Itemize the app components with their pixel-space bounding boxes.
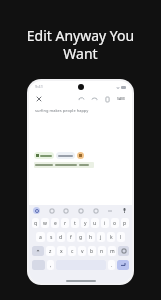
button[interactable]: i <box>101 218 109 228</box>
staticText: f <box>70 234 72 241</box>
button[interactable]: o <box>111 218 119 228</box>
button[interactable]: Tool 1 <box>62 207 69 214</box>
button[interactable]: y <box>81 218 89 228</box>
staticText: b <box>90 248 94 255</box>
button[interactable]: , <box>47 260 54 270</box>
staticText: g <box>79 234 83 241</box>
button[interactable]: Tool 2 <box>77 207 84 214</box>
button[interactable]: Tool 0 <box>48 207 55 214</box>
button[interactable]: Close <box>34 94 43 103</box>
staticText: SAVE <box>117 96 126 101</box>
staticText: o <box>113 220 117 227</box>
staticText: a <box>39 234 42 241</box>
staticText: u <box>93 220 97 227</box>
button[interactable]: k <box>107 232 115 242</box>
staticText: q <box>34 220 38 227</box>
staticText: h <box>89 234 93 241</box>
button[interactable]: b <box>88 246 96 256</box>
button[interactable]: l <box>117 232 125 242</box>
staticText: z <box>49 248 52 255</box>
staticText: y <box>84 220 87 227</box>
button[interactable]: d <box>57 232 65 242</box>
button[interactable]: n <box>98 246 106 256</box>
button[interactable] <box>34 162 94 168</box>
button[interactable]: u <box>91 218 99 228</box>
staticText: p <box>123 220 127 227</box>
button[interactable]: p <box>121 218 129 228</box>
button[interactable]: h <box>87 232 95 242</box>
button[interactable] <box>34 152 54 159</box>
button[interactable]: Copy <box>103 95 111 103</box>
staticText: w <box>43 220 47 227</box>
staticText: 9:41 <box>35 84 43 89</box>
staticText: l <box>120 234 122 241</box>
staticText: v <box>81 248 84 255</box>
button[interactable]: Redo <box>90 95 98 103</box>
button[interactable]: v <box>78 246 86 256</box>
button[interactable]: Numbers <box>32 260 45 270</box>
staticText: n <box>100 248 104 255</box>
button[interactable]: SAVE <box>116 95 127 102</box>
button[interactable]: j <box>97 232 105 242</box>
staticText: i <box>104 220 106 227</box>
staticText: d <box>59 234 63 241</box>
button[interactable]: r <box>61 218 69 228</box>
staticText: , <box>50 262 52 269</box>
staticText: r <box>64 220 67 227</box>
staticText: e <box>54 220 57 227</box>
button[interactable]: . <box>108 260 115 270</box>
button[interactable]: More <box>106 207 113 214</box>
staticText: t <box>74 220 76 227</box>
button[interactable]: g <box>77 232 85 242</box>
staticText: s <box>50 234 53 241</box>
button[interactable]: Tool 3 <box>92 207 99 214</box>
staticText: c <box>71 248 74 255</box>
button[interactable]: Assistant <box>33 207 40 214</box>
button[interactable]: e <box>51 218 59 228</box>
button[interactable]: c <box>68 246 76 256</box>
staticText: Edit Anyway You Want <box>14 26 147 63</box>
button[interactable]: m <box>108 246 116 256</box>
button[interactable]: Shift <box>32 246 44 256</box>
button[interactable]: z <box>46 246 55 256</box>
staticText: k <box>110 234 113 241</box>
button[interactable]: q <box>32 218 39 228</box>
button[interactable]: Backspace <box>118 246 129 256</box>
button[interactable] <box>56 152 75 159</box>
button[interactable]: Undo <box>77 95 85 103</box>
button[interactable]: More <box>77 152 84 159</box>
staticText: x <box>60 248 63 255</box>
staticText: j <box>100 234 102 241</box>
staticText: surfing makes people happy <box>35 108 89 113</box>
button[interactable]: Enter <box>117 260 129 270</box>
button[interactable]: a <box>36 232 45 242</box>
button[interactable]: Voice input <box>121 207 128 214</box>
button[interactable]: s <box>47 232 55 242</box>
staticText: m <box>110 248 115 255</box>
button[interactable]: f <box>67 232 75 242</box>
button[interactable]: x <box>57 246 66 256</box>
staticText: . <box>111 262 113 269</box>
button[interactable]: w <box>41 218 49 228</box>
button[interactable]: t <box>71 218 79 228</box>
